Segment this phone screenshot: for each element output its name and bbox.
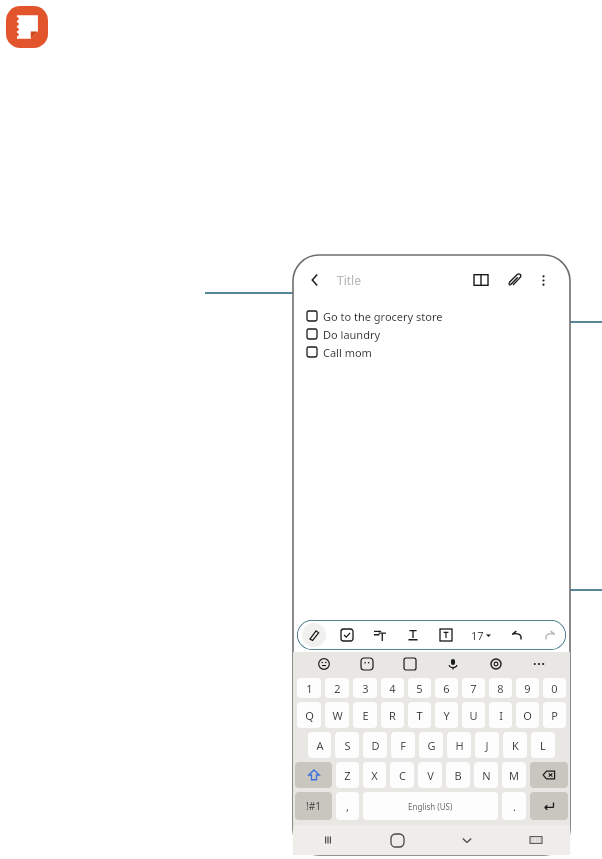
button[interactable]: U: [462, 702, 485, 728]
button[interactable]: 0: [543, 678, 566, 698]
button[interactable]: 3: [353, 678, 377, 698]
button[interactable]: ,: [336, 792, 359, 820]
staticText: P: [551, 708, 558, 723]
button[interactable]: X: [363, 762, 386, 788]
staticText: F: [400, 738, 406, 753]
staticText: B: [454, 768, 462, 783]
button[interactable]: Checklist: [330, 620, 363, 650]
button[interactable]: 8: [489, 678, 512, 698]
button[interactable]: 17: [462, 620, 500, 650]
staticText: C: [399, 768, 406, 783]
staticText: 0: [551, 681, 558, 696]
staticText: U: [469, 708, 478, 723]
button[interactable]: Stickers: [345, 652, 388, 676]
button[interactable]: R: [381, 702, 404, 728]
button[interactable]: P: [543, 702, 566, 728]
button[interactable]: Text box: [429, 620, 462, 650]
button[interactable]: K: [503, 732, 527, 758]
button[interactable]: D: [363, 732, 387, 758]
staticText: A: [316, 738, 324, 753]
button[interactable]: 6: [435, 678, 458, 698]
button[interactable]: H: [447, 732, 471, 758]
button[interactable]: Y: [435, 702, 458, 728]
button[interactable]: M: [502, 762, 526, 788]
staticText: G: [427, 738, 436, 753]
button[interactable]: Pen: [297, 620, 330, 650]
button[interactable]: !#1: [295, 792, 332, 820]
button[interactable]: More: [517, 652, 560, 676]
staticText: English (US): [408, 801, 453, 812]
button[interactable]: C: [390, 762, 414, 788]
button[interactable]: Paragraph: [363, 620, 396, 650]
button[interactable]: Home: [363, 825, 432, 855]
staticText: E: [362, 708, 369, 723]
button[interactable]: W: [325, 702, 349, 728]
button[interactable]: Recents: [293, 825, 363, 855]
button[interactable]: 1: [297, 678, 321, 698]
staticText: 2: [334, 681, 341, 696]
staticText: Z: [344, 768, 351, 783]
button[interactable]: Emoji: [303, 652, 345, 676]
button[interactable]: T: [408, 702, 431, 728]
staticText: D: [371, 738, 380, 753]
staticText: 6: [443, 681, 450, 696]
button[interactable]: Q: [297, 702, 321, 728]
button[interactable]: A: [308, 732, 331, 758]
staticText: Q: [305, 708, 314, 723]
staticText: W: [332, 708, 343, 723]
staticText: I: [499, 708, 503, 723]
button[interactable]: S: [335, 732, 359, 758]
button[interactable]: O: [516, 702, 539, 728]
button[interactable]: 4: [381, 678, 404, 698]
staticText: Do laundry: [323, 327, 381, 342]
staticText: 7: [470, 681, 477, 696]
button[interactable]: I: [489, 702, 512, 728]
button[interactable]: V: [418, 762, 442, 788]
button[interactable]: 7: [462, 678, 485, 698]
button[interactable]: Backspace: [530, 762, 568, 788]
button[interactable]: GIF: [388, 652, 431, 676]
button[interactable]: L: [531, 732, 555, 758]
button[interactable]: Text style: [396, 620, 429, 650]
staticText: 1: [306, 681, 313, 696]
button[interactable]: J: [475, 732, 499, 758]
button[interactable]: Hide keyboard: [432, 825, 501, 855]
button[interactable]: N: [474, 762, 498, 788]
button[interactable]: G: [419, 732, 443, 758]
button[interactable]: Keyboard layout: [501, 825, 570, 855]
button[interactable]: .: [502, 792, 526, 820]
button[interactable]: More options: [530, 267, 556, 293]
button[interactable]: E: [353, 702, 377, 728]
button[interactable]: Back: [299, 264, 331, 296]
button[interactable]: Enter: [530, 792, 568, 820]
button[interactable]: Voice input: [431, 652, 474, 676]
button[interactable]: Do laundry: [307, 325, 570, 343]
button[interactable]: English (US): [363, 792, 498, 820]
button[interactable]: Undo: [500, 620, 533, 650]
button[interactable]: 5: [408, 678, 431, 698]
staticText: Go to the grocery store: [323, 309, 443, 324]
button[interactable]: Settings: [474, 652, 517, 676]
button[interactable]: Split view: [466, 265, 496, 295]
button[interactable]: Redo: [533, 620, 566, 650]
button[interactable]: Samsung Notes: [6, 6, 48, 48]
staticText: ,: [346, 799, 349, 814]
staticText: S: [344, 738, 351, 753]
button[interactable]: Z: [336, 762, 359, 788]
button[interactable]: Go to the grocery store: [307, 307, 570, 325]
button[interactable]: B: [446, 762, 470, 788]
button[interactable]: 9: [516, 678, 539, 698]
staticText: H: [455, 738, 464, 753]
staticText: R: [389, 708, 396, 723]
staticText: !#1: [306, 799, 321, 813]
button[interactable]: Attach: [499, 265, 529, 295]
staticText: M: [509, 768, 519, 783]
staticText: 8: [497, 681, 504, 696]
button[interactable]: F: [391, 732, 415, 758]
staticText: N: [482, 768, 491, 783]
staticText: Y: [443, 708, 450, 723]
staticText: J: [485, 738, 489, 753]
button[interactable]: Call mom: [307, 343, 570, 361]
button[interactable]: 2: [325, 678, 349, 698]
button[interactable]: Shift: [295, 762, 332, 788]
